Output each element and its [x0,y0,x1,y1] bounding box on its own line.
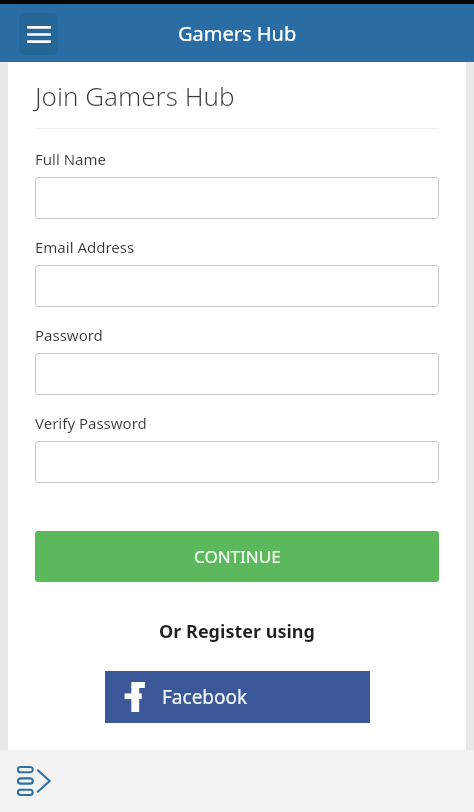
button[interactable]: CONTINUE [35,531,439,582]
staticText: Join Gamers Hub [35,78,235,113]
staticText: Email Address [35,237,135,257]
staticText: CONTINUE [194,545,281,568]
button[interactable]: Facebook [105,671,370,723]
staticText: Verify Password [35,413,147,433]
staticText: Password [35,325,103,345]
button[interactable] [35,265,439,307]
button[interactable]: More options [10,757,58,805]
button[interactable] [35,353,439,395]
button[interactable]: Open navigation menu [19,13,58,55]
staticText: Or Register using [8,619,466,644]
button[interactable] [35,177,439,219]
staticText: Gamers Hub [178,20,297,47]
button[interactable] [35,441,439,483]
staticText: Full Name [35,149,106,169]
staticText: Facebook [162,684,248,710]
